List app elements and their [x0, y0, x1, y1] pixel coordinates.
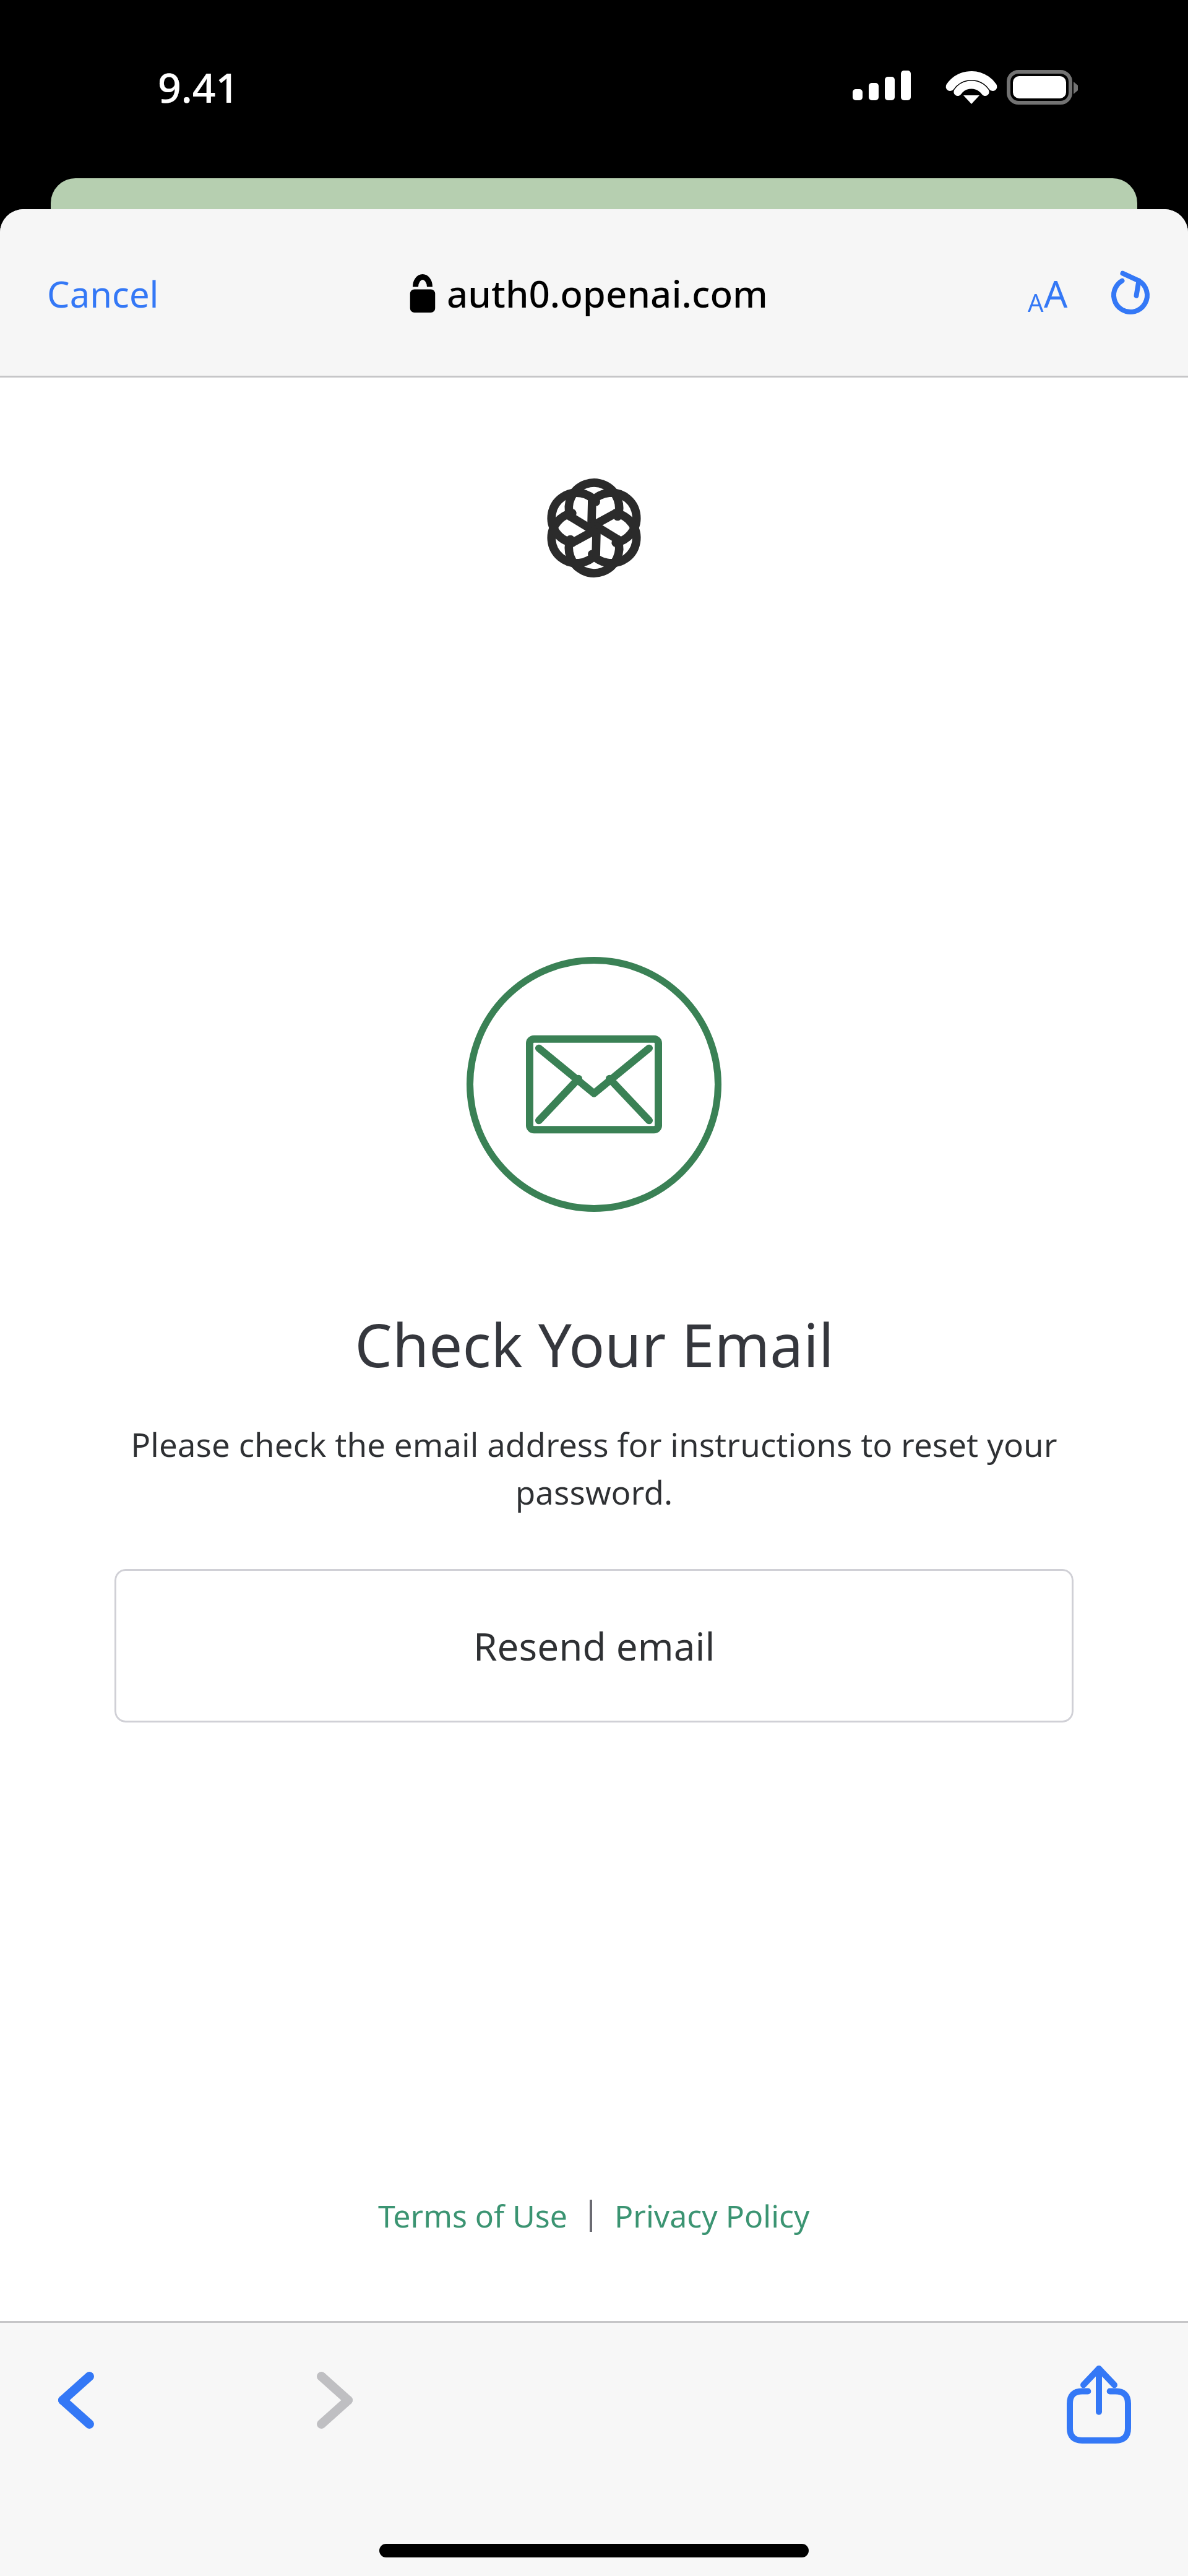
button[interactable]: Terms of Use	[372, 2185, 574, 2247]
button[interactable]: Privacy Policy	[608, 2185, 816, 2247]
button[interactable]: Forward	[296, 2351, 374, 2450]
staticText: auth0.openai.com	[447, 268, 768, 319]
button[interactable]: Share	[1048, 2346, 1150, 2462]
staticText: Terms of Use	[378, 2195, 567, 2237]
staticText: Check Your Email	[355, 1303, 834, 1385]
button[interactable]: Text size	[1017, 256, 1079, 331]
button[interactable]: Back	[37, 2351, 115, 2450]
button[interactable]: Reload	[1098, 261, 1163, 326]
staticText: 9.41	[158, 59, 239, 115]
staticText: Please check the email address for instr…	[93, 1422, 1095, 1515]
staticText: Resend email	[473, 1620, 715, 1672]
button[interactable]: Resend email	[114, 1569, 1074, 1722]
staticText: A	[1028, 285, 1044, 319]
staticText: Cancel	[47, 269, 159, 318]
staticText: A	[1044, 268, 1068, 319]
button[interactable]: Cancel	[25, 254, 181, 333]
staticText: Privacy Policy	[614, 2195, 810, 2237]
